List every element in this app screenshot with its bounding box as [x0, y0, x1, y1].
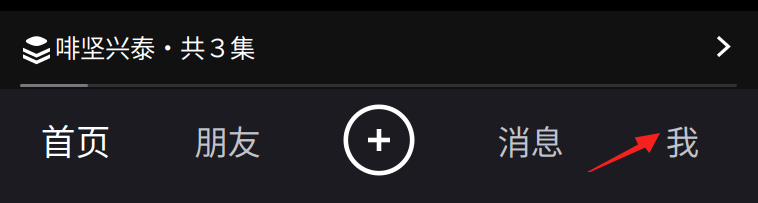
staticText: 啡坚兴泰・共３集: [55, 28, 255, 65]
button[interactable]: 消息: [455, 89, 606, 191]
button[interactable]: 啡坚兴泰・共３集: [0, 11, 758, 82]
button[interactable]: 朋友: [152, 89, 303, 191]
staticText: 我: [666, 116, 699, 164]
button[interactable]: 发布: [303, 89, 455, 191]
staticText: 消息: [498, 116, 564, 164]
button[interactable]: 首页: [0, 89, 152, 191]
button[interactable]: 我: [606, 89, 758, 191]
staticText: 首页: [41, 115, 111, 165]
staticText: 朋友: [194, 116, 260, 164]
